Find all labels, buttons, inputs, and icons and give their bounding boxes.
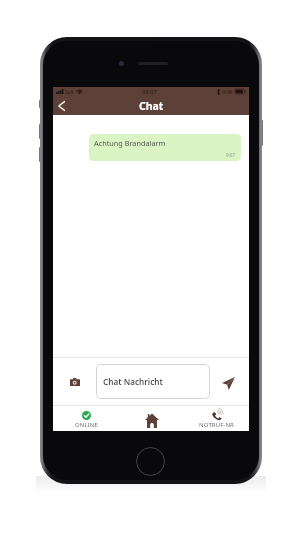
- staticText: 09:07: [142, 88, 157, 96]
- staticText: NOTRUF-NR: [199, 421, 234, 429]
- staticText: 9:07: [226, 152, 236, 158]
- button[interactable]: NOTRUF-NR: [184, 406, 249, 431]
- staticText: Chat: [139, 99, 164, 113]
- staticText: 90%: [222, 88, 233, 95]
- button[interactable]: ONLINE: [53, 406, 119, 431]
- staticText: Chat Nachricht: [103, 376, 163, 387]
- button[interactable]: Camera: [53, 358, 96, 405]
- button[interactable]: Home: [119, 406, 184, 431]
- staticText: Salt: [65, 88, 74, 95]
- staticText: ONLINE: [75, 421, 98, 429]
- staticText: Achtung Brandalarm: [94, 138, 166, 148]
- button[interactable]: Send: [210, 358, 249, 405]
- button[interactable]: Chat Nachricht: [96, 364, 210, 399]
- button[interactable]: Back: [53, 96, 71, 115]
